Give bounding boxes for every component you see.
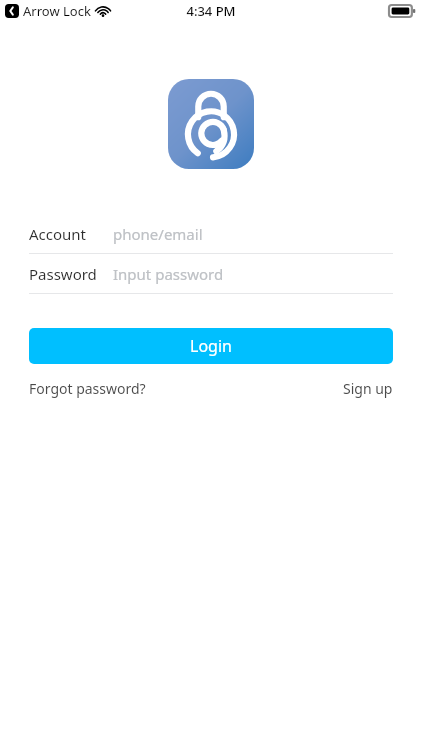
staticText: Password <box>29 264 97 284</box>
staticText: Arrow Lock <box>23 2 91 20</box>
staticText: Sign up <box>343 379 393 398</box>
button[interactable]: Account <box>0 214 422 253</box>
staticText: 4:34 PM <box>186 2 236 20</box>
button[interactable]: Forgot password? <box>29 373 146 404</box>
staticText: Login <box>190 335 232 357</box>
button[interactable]: Login <box>29 328 393 364</box>
staticText: Forgot password? <box>29 379 146 398</box>
staticText: phone/email <box>113 224 203 244</box>
other: Arrow Lock logo <box>168 79 254 169</box>
button[interactable]: Sign up <box>343 373 393 404</box>
button[interactable]: Password <box>0 254 422 293</box>
staticText: Input password <box>113 264 224 284</box>
staticText: Account <box>29 224 87 244</box>
button[interactable]: Back to Arrow Lock <box>5 2 110 20</box>
